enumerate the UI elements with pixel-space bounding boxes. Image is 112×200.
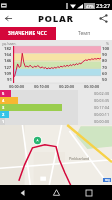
staticText: 146 — [4, 58, 12, 64]
button[interactable]: 2 — [0, 111, 112, 118]
button[interactable]: 5 — [0, 90, 112, 97]
staticText: 00:02:30 — [94, 91, 110, 96]
staticText: 00:00:00 — [9, 84, 25, 89]
staticText: 164 — [4, 52, 12, 58]
staticText: ЗНАЧЕНИЕ ЧСС — [8, 30, 48, 37]
staticText: 182 — [4, 46, 12, 52]
staticText: вид — [105, 178, 110, 182]
button[interactable]: Share — [95, 10, 112, 27]
staticText: 50 — [102, 77, 107, 83]
staticText: 127 — [4, 65, 12, 71]
staticText: % — [106, 41, 109, 46]
button[interactable]: 1 — [0, 118, 112, 125]
button[interactable]: Recent apps — [79, 185, 99, 200]
staticText: 00:17:04 — [94, 105, 110, 110]
staticText: 91 — [7, 77, 12, 83]
button[interactable]: Back — [13, 185, 33, 200]
button[interactable]: 3 — [0, 104, 112, 111]
staticText: 5 — [2, 91, 5, 96]
staticText: 00:00:00 — [94, 119, 110, 124]
staticText: 4 — [2, 98, 5, 103]
staticText: 00:03:35 — [94, 98, 110, 103]
staticText: Темп — [78, 30, 91, 37]
staticText: 23:27 — [96, 2, 111, 9]
button[interactable]: Home — [46, 185, 66, 200]
staticText: уд./мин. — [2, 41, 17, 46]
button[interactable]: Back — [0, 10, 17, 27]
staticText: 00:20:00 — [59, 84, 75, 89]
button[interactable]: Темп — [56, 27, 112, 40]
staticText: 80 — [102, 58, 107, 64]
button[interactable]: Pinkbarland — [0, 125, 112, 185]
staticText: 100 — [102, 46, 110, 52]
staticText: POLAR — [38, 12, 74, 25]
staticText: 2 — [2, 112, 5, 117]
staticText: 60 — [102, 71, 107, 77]
staticText: 70 — [102, 65, 107, 71]
staticText: 00:30:00 — [84, 84, 100, 89]
staticText: 109 — [4, 71, 12, 77]
staticText: 1 — [2, 119, 5, 124]
staticText: 00:00:11 — [94, 112, 110, 117]
button[interactable]: 4 — [0, 97, 112, 104]
staticText: Pinkbarland — [69, 156, 90, 161]
staticText: 00:10:00 — [34, 84, 50, 89]
button[interactable]: ЗНАЧЕНИЕ ЧСС — [0, 27, 56, 40]
staticText: 47% — [86, 4, 94, 9]
staticText: 90 — [102, 52, 107, 58]
staticText: 3 — [2, 105, 5, 110]
